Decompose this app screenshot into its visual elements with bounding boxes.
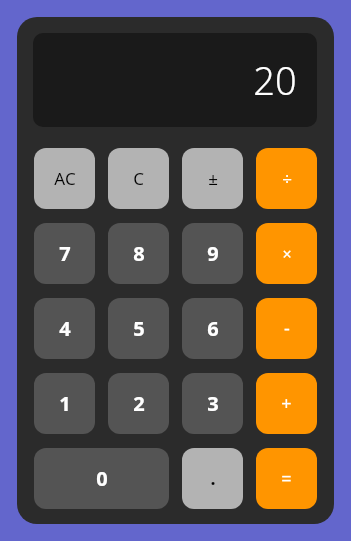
button[interactable]: 1 — [34, 373, 95, 434]
button[interactable]: 8 — [108, 223, 169, 284]
button[interactable]: Equals — [256, 448, 317, 509]
staticText: - — [284, 316, 290, 341]
button[interactable]: AC — [34, 148, 95, 209]
staticText: + — [281, 391, 292, 416]
staticText: 4 — [59, 315, 71, 342]
staticText: 0 — [96, 465, 108, 492]
staticText: 5 — [133, 315, 145, 342]
button[interactable]: 9 — [182, 223, 243, 284]
staticText: 20 — [253, 54, 297, 106]
button[interactable]: Divide — [256, 148, 317, 209]
button[interactable]: 3 — [182, 373, 243, 434]
staticText: 9 — [207, 240, 219, 267]
button[interactable]: Minus — [256, 298, 317, 359]
button[interactable]: 6 — [182, 298, 243, 359]
button[interactable]: 0 — [34, 448, 169, 509]
button[interactable]: Plus — [256, 373, 317, 434]
staticText: C — [133, 167, 144, 190]
staticText: 1 — [59, 390, 71, 417]
staticText: . — [210, 466, 216, 491]
button[interactable]: . — [182, 448, 243, 509]
button[interactable]: 2 — [108, 373, 169, 434]
staticText: = — [281, 466, 292, 491]
staticText: ÷ — [282, 167, 292, 190]
button[interactable]: 5 — [108, 298, 169, 359]
staticText: 2 — [133, 390, 145, 417]
staticText: 8 — [133, 240, 145, 267]
staticText: 6 — [207, 315, 219, 342]
staticText: 3 — [207, 390, 219, 417]
button[interactable]: 4 — [34, 298, 95, 359]
button[interactable]: C — [108, 148, 169, 209]
button[interactable]: Multiply — [256, 223, 317, 284]
button[interactable]: Plus minus — [182, 148, 243, 209]
staticText: AC — [54, 167, 76, 190]
staticText: ± — [208, 167, 218, 190]
staticText: × — [282, 243, 292, 265]
button[interactable]: 7 — [34, 223, 95, 284]
staticText: 7 — [59, 240, 71, 267]
